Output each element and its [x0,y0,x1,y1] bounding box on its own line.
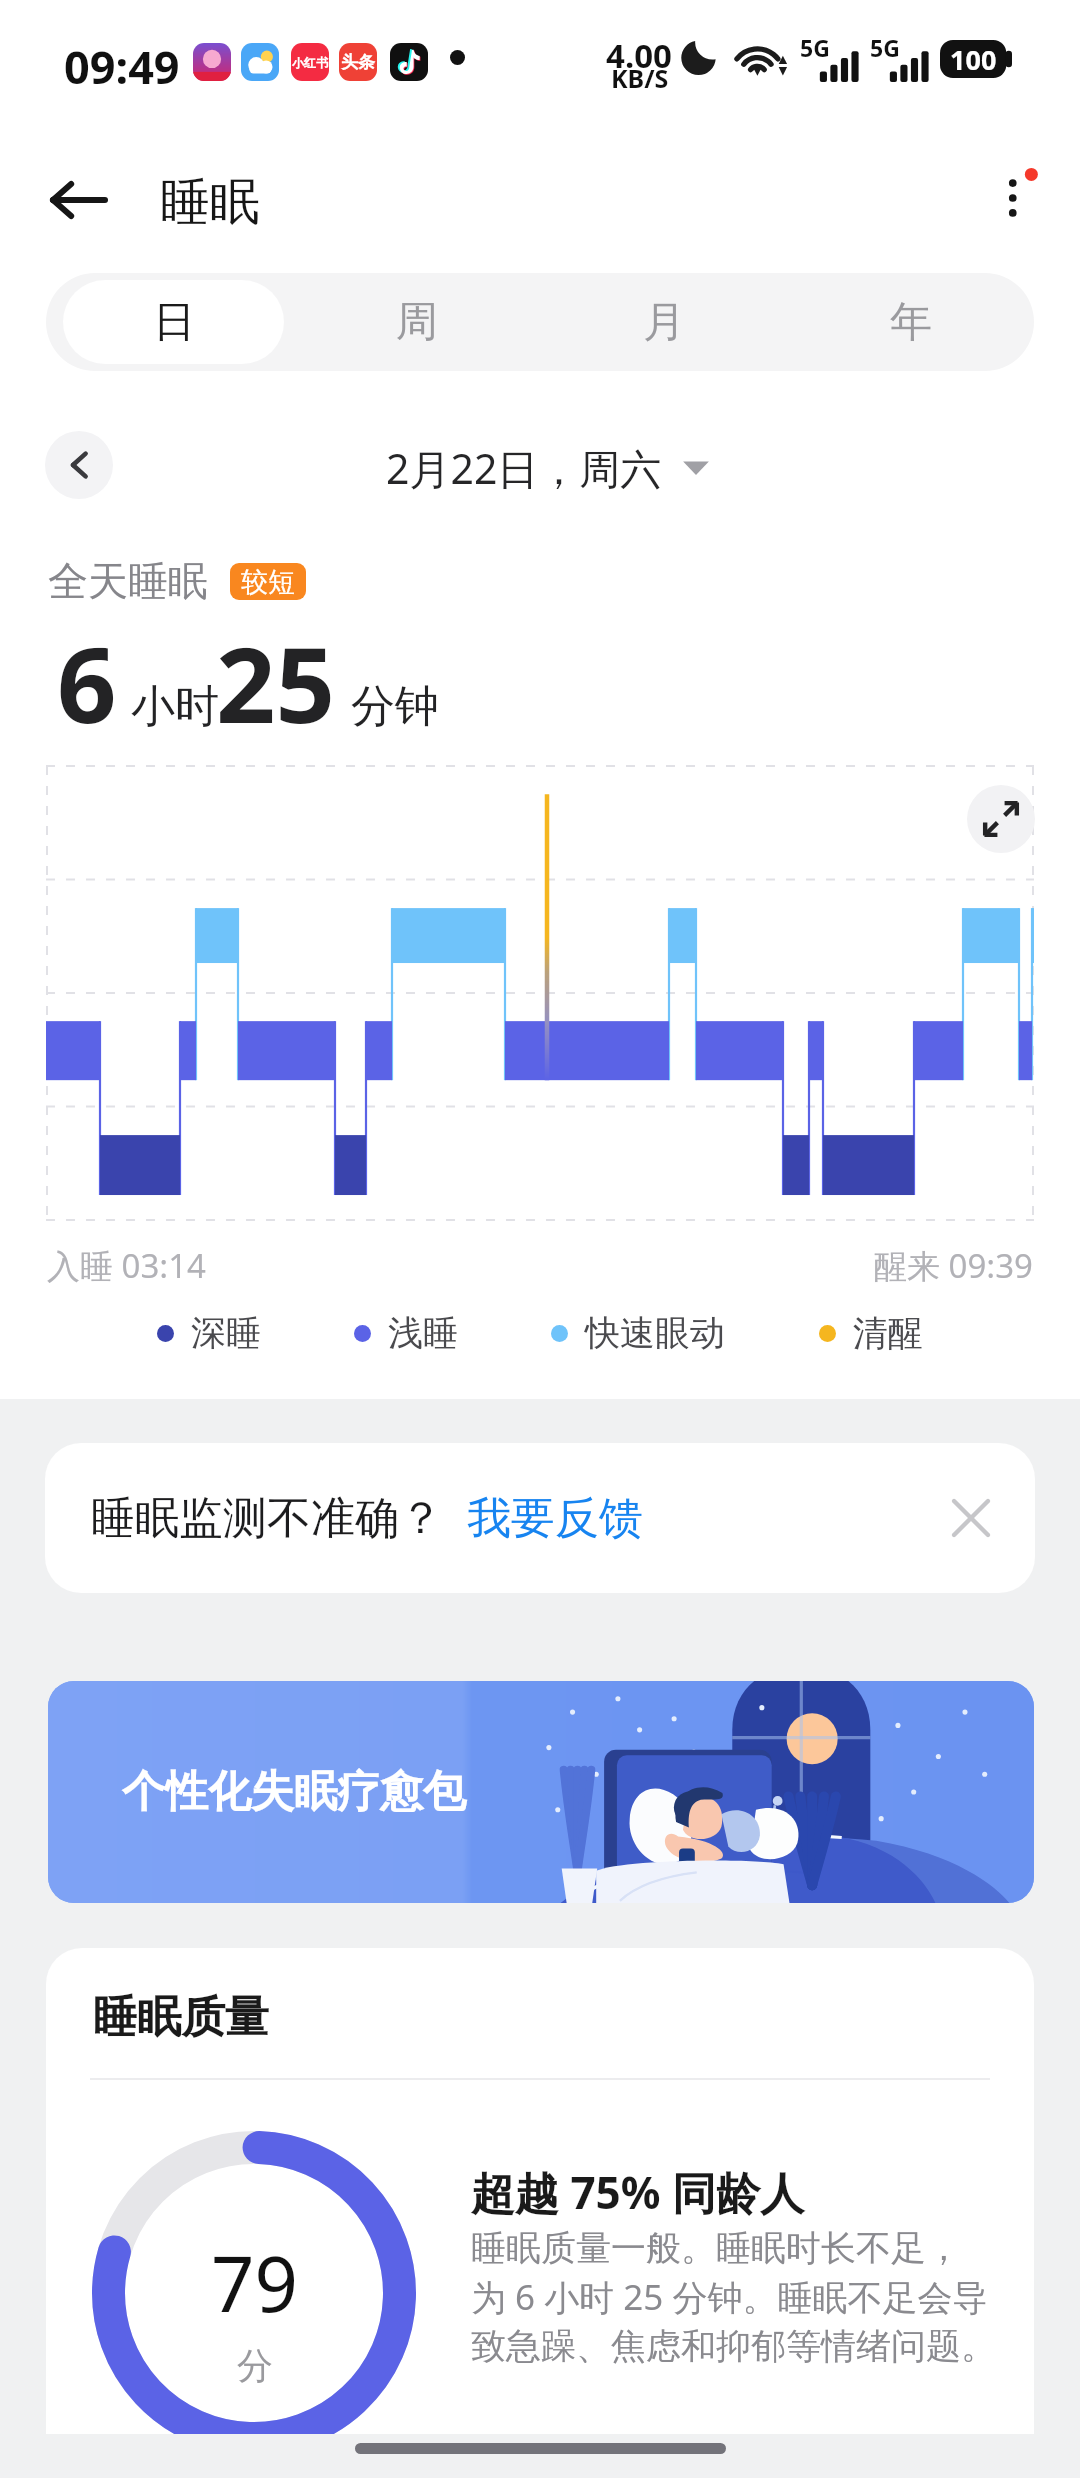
staticText: 较短 [241,565,295,599]
staticText: 超越 75% 同龄人 [471,2162,804,2222]
staticText: 4.00 [606,33,672,78]
button[interactable]: Expand chart [967,785,1035,853]
button[interactable]: 睡眠监测不准确？ [45,1443,1035,1593]
button[interactable]: 日 [63,280,284,364]
button[interactable]: 个性化失眠疗愈包 [48,1681,1034,1903]
staticText: 09:49 [64,36,180,97]
staticText: 浅睡 [388,1311,458,1355]
staticText: 6 [57,612,117,754]
staticText: 小时 [131,679,219,734]
button[interactable]: 睡眠质量 [46,1948,1034,2434]
button[interactable]: 2月22日，周六 [386,440,710,496]
staticText: 醒来 09:39 [874,1243,1033,1288]
staticText: 分钟 [351,679,439,734]
staticText: 25 [216,612,335,754]
staticText: 分 [237,2343,273,2388]
staticText: 头条 [341,52,375,73]
staticText: 小红书 [292,55,328,70]
staticText: 79 [211,2231,298,2335]
button[interactable]: Close [935,1482,1007,1554]
staticText: 月 [643,296,685,349]
staticText: 睡眠监测不准确？ [91,1491,443,1546]
staticText: 深睡 [191,1311,261,1355]
button[interactable]: 周 [293,273,540,371]
button[interactable]: 月 [540,273,787,371]
staticText: KB/S [611,61,669,95]
staticText: 睡眠质量一般。睡眠时长不足， 为 6 小时 25 分钟。睡眠不足会导 致急躁、焦… [471,2226,996,2368]
staticText: 周 [396,296,438,349]
button[interactable]: Back [29,150,129,250]
staticText: 睡眠 [160,171,260,234]
staticText: 日 [153,296,195,349]
staticText: 个性化失眠疗愈包 [122,1765,466,1819]
staticText: 全天睡眠 [48,556,208,606]
staticText: 100 [950,41,997,78]
staticText: 我要反馈 [467,1491,643,1546]
staticText: 5G [870,32,900,63]
button[interactable]: 我要反馈 [467,1491,643,1546]
staticText: 年 [890,296,932,349]
button[interactable]: Previous day [45,431,113,499]
staticText: 入睡 03:14 [47,1243,206,1288]
button[interactable]: 年 [787,273,1034,371]
staticText: 睡眠质量 [93,1990,269,2045]
button[interactable]: More options [966,150,1062,246]
staticText: 清醒 [853,1311,923,1355]
staticText: 5G [800,32,830,63]
staticText: 2月22日，周六 [386,440,662,496]
staticText: 快速眼动 [585,1311,725,1355]
